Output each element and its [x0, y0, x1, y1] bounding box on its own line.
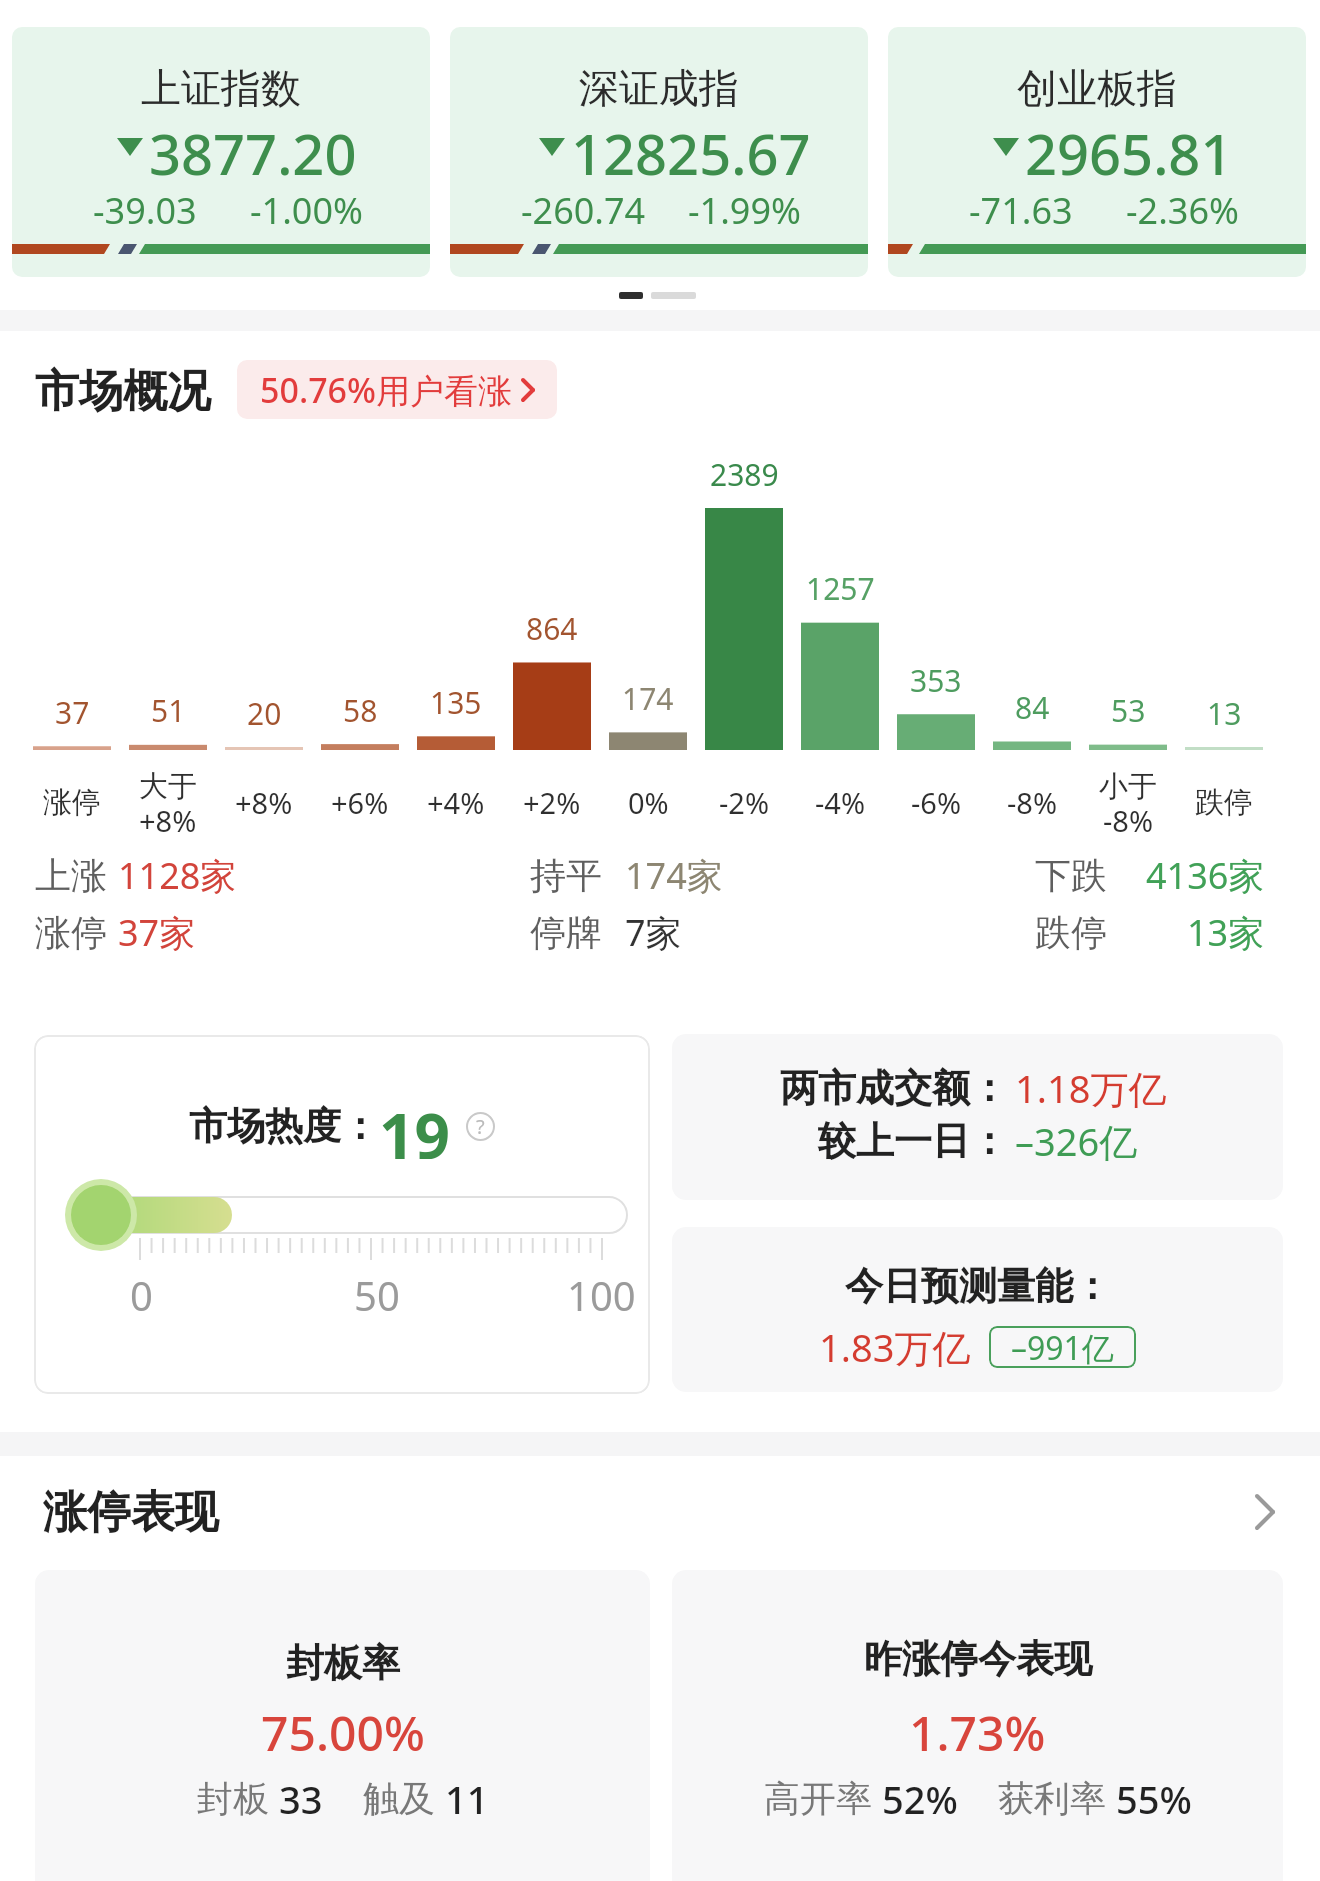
staticText: 50.76%用户看涨 [260, 367, 513, 413]
staticText: +8% [235, 783, 293, 822]
staticText: 4136家 [1146, 851, 1265, 900]
button[interactable]: 封板率 [35, 1570, 650, 1881]
staticText: 触及 [363, 1773, 445, 1822]
staticText: 创业板指 [1017, 63, 1177, 113]
staticText: 3877.20 [149, 115, 357, 177]
staticText: 获利率 [998, 1773, 1116, 1822]
staticText: -8% [1103, 801, 1154, 840]
button[interactable]: 市场热度： [34, 1035, 650, 1394]
staticText: 0% [628, 783, 669, 822]
staticText: 涨停表现 [43, 1485, 219, 1540]
staticText: 11 [445, 1773, 489, 1825]
staticText: 高开率 [764, 1773, 882, 1822]
staticText: 135 [430, 682, 482, 723]
button[interactable]: 深证成指 [450, 27, 868, 277]
button[interactable] [1240, 1490, 1290, 1534]
staticText: 19 [379, 1093, 450, 1159]
staticText: 13 [1207, 693, 1242, 734]
staticText: 两市成交额： [780, 1064, 1008, 1112]
staticText: 13家 [1187, 908, 1265, 957]
staticText: 55% [1116, 1773, 1192, 1825]
staticText: 上涨 [35, 853, 107, 898]
staticText: 跌停 [1035, 910, 1107, 955]
staticText: -71.63 [969, 186, 1073, 232]
staticText: 市场概况 [35, 364, 211, 419]
staticText: 下跌 [1035, 853, 1107, 898]
staticText: 100 [567, 1268, 636, 1322]
staticText: 84 [1015, 687, 1050, 728]
staticText: 7家 [625, 908, 682, 957]
staticText: 1.18万亿 [1015, 1062, 1167, 1114]
staticText: -2% [719, 783, 770, 822]
staticText: +4% [427, 783, 485, 822]
staticText: -4% [815, 783, 866, 822]
staticText: 353 [910, 660, 962, 701]
staticText: 持平 [530, 853, 602, 898]
button[interactable]: 昨涨停今表现 [672, 1570, 1283, 1881]
staticText: 52% [882, 1773, 958, 1825]
button[interactable]: 今日预测量能： [672, 1227, 1283, 1392]
staticText: -39.03 [93, 186, 197, 232]
button[interactable]: 50.76%用户看涨 [237, 360, 557, 419]
staticText: 较上一日： [818, 1117, 1008, 1165]
staticText: 2965.81 [1025, 115, 1233, 177]
staticText: 今日预测量能： [845, 1262, 1111, 1310]
staticText: 涨停 [43, 784, 101, 821]
staticText: 174 [622, 678, 674, 719]
staticText: -6% [911, 783, 962, 822]
button[interactable] [672, 1034, 1283, 1200]
staticText: 50 [354, 1268, 400, 1322]
staticText: 174家 [625, 851, 723, 900]
staticText: -260.74 [521, 186, 646, 232]
staticText: 封板率 [286, 1639, 400, 1687]
staticText: 1128家 [118, 851, 237, 900]
staticText: 上证指数 [141, 63, 301, 113]
staticText: 涨停 [35, 910, 107, 955]
staticText: +6% [331, 783, 389, 822]
staticText: 20 [247, 693, 282, 734]
staticText: –991亿 [1011, 1326, 1114, 1368]
staticText: 小于 [1099, 768, 1157, 805]
staticText: 0 [130, 1268, 153, 1322]
staticText: 864 [526, 608, 578, 649]
staticText: +2% [523, 783, 581, 822]
staticText: -1.00% [250, 186, 363, 232]
staticText: 昨涨停今表现 [864, 1635, 1092, 1683]
staticText: 1.83万亿 [819, 1321, 971, 1373]
button[interactable]: 创业板指 [888, 27, 1306, 277]
staticText: -8% [1007, 783, 1058, 822]
staticText: 58 [343, 690, 378, 731]
staticText: 37家 [118, 908, 196, 957]
staticText: -1.99% [688, 186, 801, 232]
staticText: 停牌 [530, 910, 602, 955]
staticText: 跌停 [1195, 784, 1253, 821]
staticText: 51 [151, 690, 186, 731]
staticText: 2389 [710, 454, 779, 495]
button[interactable]: 上证指数 [12, 27, 430, 277]
staticText: 53 [1111, 690, 1146, 731]
staticText: 75.00% [261, 1700, 425, 1760]
staticText: 1257 [806, 568, 875, 609]
staticText: 33 [279, 1773, 323, 1825]
staticText: -2.36% [1126, 186, 1239, 232]
staticText: 大于 [139, 768, 197, 805]
staticText: 封板 [197, 1773, 279, 1822]
staticText: ? [476, 1113, 485, 1140]
staticText: 深证成指 [579, 63, 739, 113]
staticText: 1.73% [909, 1700, 1046, 1760]
staticText: 市场热度： [189, 1102, 379, 1150]
staticText: 12825.67 [571, 115, 811, 177]
staticText: 37 [55, 692, 90, 733]
staticText: –326亿 [1015, 1115, 1138, 1167]
staticText: +8% [139, 801, 197, 840]
